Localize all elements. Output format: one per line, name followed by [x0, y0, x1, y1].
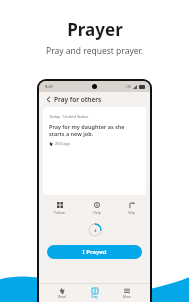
staticText: 254 ago	[55, 141, 71, 146]
staticText: I Prayed	[82, 248, 107, 256]
button[interactable]: Back	[44, 95, 53, 104]
button[interactable]: More	[117, 286, 137, 301]
button[interactable]: Follow	[51, 201, 68, 216]
button[interactable]: Pray	[85, 286, 104, 301]
staticText: 9:41	[45, 84, 53, 89]
staticText: Pray	[91, 295, 98, 299]
staticText: Pray and request prayer.	[46, 45, 143, 57]
staticText: Follow	[54, 210, 65, 215]
staticText: Skip	[128, 210, 135, 215]
button[interactable]: Help	[90, 201, 104, 216]
staticText: More	[123, 295, 131, 299]
staticText: Pray for others	[54, 95, 102, 104]
staticText: 4	[94, 228, 97, 233]
button[interactable]: I Prayed	[47, 245, 142, 259]
button[interactable]: Read	[52, 286, 72, 301]
staticText: Prayer	[67, 18, 123, 41]
staticText: Help	[93, 210, 101, 215]
staticText: Read	[58, 295, 66, 299]
button[interactable]: Today · United States	[43, 107, 146, 195]
staticText: LTE	[126, 85, 131, 89]
staticText: Today · United States	[49, 114, 89, 119]
button[interactable]: Skip	[125, 201, 138, 216]
staticText: Pray for my daughter as she starts a new…	[49, 123, 140, 137]
button[interactable]: Timer	[88, 223, 102, 237]
